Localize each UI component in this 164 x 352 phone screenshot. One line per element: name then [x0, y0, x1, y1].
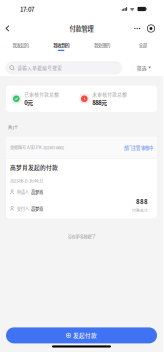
- staticText: 单据编号 ASD-PK-202307-0002: [10, 144, 64, 150]
- button[interactable]: 单据编号 ASD-PK-202307-0002: [6, 137, 157, 218]
- staticText: 888元: [92, 98, 107, 107]
- button[interactable]: 请输入单据编号搜索: [5, 61, 122, 75]
- button[interactable]: 更多: [133, 23, 141, 34]
- staticText: 全部: [139, 42, 147, 48]
- staticText: 未审核付款总额: [92, 91, 127, 98]
- staticText: 高梦肖发起的付款: [10, 163, 58, 171]
- button[interactable]: 筛选: [134, 61, 154, 75]
- button[interactable]: 我处理的: [81, 39, 122, 54]
- button[interactable]: 我收到的: [41, 39, 82, 54]
- staticText: 共1个: [8, 124, 18, 130]
- staticText: 我发起的: [12, 42, 28, 48]
- staticText: 高梦肖: [31, 189, 43, 195]
- staticText: 17:07: [20, 5, 34, 13]
- staticText: 发起付款: [73, 331, 97, 339]
- staticText: 我处理的: [94, 42, 110, 48]
- button[interactable]: 全部: [122, 39, 163, 54]
- staticText: 高梦肖: [31, 205, 43, 212]
- staticText: 筛选: [137, 64, 147, 71]
- staticText: 没有更多数据了: [67, 233, 95, 240]
- staticText: 2023-08-15 16:44:31: [10, 178, 43, 184]
- staticText: 部门主管 审核中: [124, 144, 153, 151]
- staticText: 支付人: [17, 205, 29, 212]
- button[interactable]: 我发起的: [0, 39, 41, 54]
- staticText: 请输入单据编号搜索: [17, 65, 62, 71]
- staticText: 申请人: [17, 189, 29, 195]
- staticText: 0元: [24, 98, 33, 107]
- button[interactable]: 发起付款: [6, 327, 157, 343]
- staticText: 付款管理: [69, 24, 93, 33]
- staticText: 888: [136, 197, 148, 206]
- button[interactable]: 关闭: [147, 23, 155, 34]
- staticText: 付款总计: [132, 207, 148, 213]
- staticText: 我收到的: [53, 42, 69, 48]
- button[interactable]: 返回: [1, 22, 14, 35]
- staticText: 已审核付款总额: [24, 91, 59, 98]
